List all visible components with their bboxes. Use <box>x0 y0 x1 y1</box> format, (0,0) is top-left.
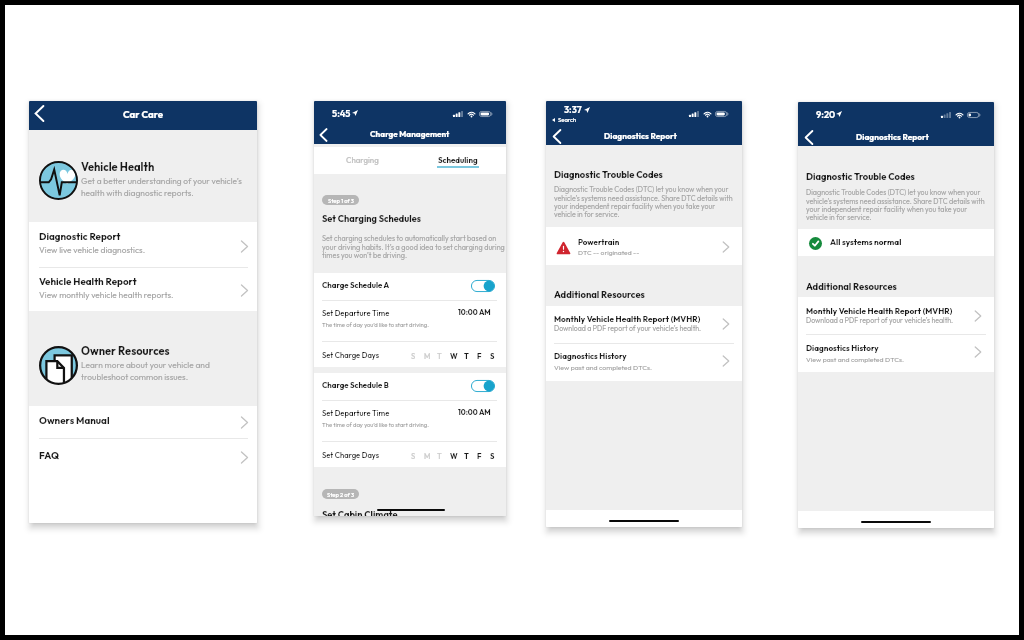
staticText: Set Departure Time <box>322 308 390 318</box>
staticText: Download a PDF report of your vehicle’s … <box>554 324 702 333</box>
staticText: Diagnostic Trouble Codes <box>806 171 915 183</box>
staticText: Set Charging Schedules <box>322 213 421 225</box>
button[interactable] <box>798 229 994 256</box>
staticText: S <box>411 451 416 461</box>
staticText: M <box>424 451 431 461</box>
button[interactable] <box>798 335 994 372</box>
button[interactable] <box>546 306 742 343</box>
button[interactable]: Back <box>800 126 816 145</box>
staticText: Diagnostic Trouble Codes <box>554 169 663 181</box>
staticText: Powertrain <box>578 237 620 247</box>
staticText: 3:37 <box>564 104 582 116</box>
staticText: Charge Schedule A <box>322 280 390 290</box>
staticText: The time of day you’d like to start driv… <box>322 321 429 328</box>
button[interactable] <box>410 147 506 174</box>
staticText: Step 2 of 3 <box>327 491 355 498</box>
staticText: S <box>411 351 416 361</box>
staticText: Monthly Vehicle Health Report (MVHR) <box>806 306 953 316</box>
button[interactable] <box>314 442 506 468</box>
button[interactable] <box>314 341 506 367</box>
staticText: FAQ <box>39 449 59 461</box>
staticText: View monthly vehicle health reports. <box>39 290 174 301</box>
staticText: Diagnostics Report <box>604 131 677 141</box>
staticText: M <box>424 351 431 361</box>
button[interactable] <box>29 439 257 471</box>
staticText: Diagnostics History <box>806 343 879 353</box>
staticText: Diagnostic Trouble Codes (DTC) let you k… <box>806 188 988 221</box>
button[interactable]: Back <box>548 125 564 144</box>
button[interactable] <box>546 343 742 380</box>
staticText: T <box>437 451 442 461</box>
button[interactable] <box>29 406 257 438</box>
staticText: Learn more about your vehicle and troubl… <box>81 360 257 382</box>
staticText: DTC -- originated -- <box>578 248 640 257</box>
staticText: View past and completed DTCs. <box>554 363 652 372</box>
staticText: Car Care <box>123 108 164 120</box>
button[interactable]: Back <box>31 103 49 127</box>
button[interactable] <box>314 301 506 341</box>
staticText: Monthly Vehicle Health Report (MVHR) <box>554 314 701 324</box>
staticText: 10:00 AM <box>458 308 491 317</box>
staticText: Download a PDF report of your vehicle’s … <box>806 316 954 325</box>
staticText: Set charging schedules to automatically … <box>322 234 506 260</box>
staticText: 5:45 <box>332 108 351 120</box>
staticText: Vehicle Health <box>81 160 155 174</box>
staticText: Set Charge Days <box>322 350 380 360</box>
button[interactable] <box>314 401 506 441</box>
staticText: Set Departure Time <box>322 408 390 418</box>
staticText: Scheduling <box>438 155 478 165</box>
staticText: Step 1 of 3 <box>328 197 354 204</box>
staticText: T <box>437 351 442 361</box>
button[interactable] <box>29 268 257 311</box>
staticText: F <box>477 351 482 361</box>
staticText: Additional Resources <box>554 289 645 301</box>
staticText: Set Charge Days <box>322 450 380 460</box>
staticText: W <box>450 451 458 461</box>
button[interactable]: Back <box>316 125 332 144</box>
staticText: T <box>464 351 469 361</box>
button[interactable] <box>798 297 994 334</box>
staticText: T <box>464 451 469 461</box>
button[interactable] <box>314 147 410 174</box>
button[interactable] <box>29 222 257 267</box>
staticText: Vehicle Health Report <box>39 275 137 287</box>
staticText: S <box>490 451 495 461</box>
staticText: Diagnostics History <box>554 351 627 361</box>
staticText: Get a better understanding of your vehic… <box>81 176 257 198</box>
staticText: S <box>490 351 495 361</box>
staticText: Diagnostics Report <box>856 132 929 142</box>
staticText: View past and completed DTCs. <box>806 355 904 364</box>
staticText: 9:20 <box>816 109 836 121</box>
staticText: F <box>477 451 482 461</box>
staticText: Owners Manual <box>39 414 110 426</box>
staticText: The time of day you’d like to start driv… <box>322 421 429 428</box>
staticText: 10:00 AM <box>458 408 491 417</box>
staticText: W <box>450 351 458 361</box>
staticText: View live vehicle diagnostics. <box>39 245 146 256</box>
staticText: Owner Resources <box>81 344 170 358</box>
button[interactable] <box>314 373 506 401</box>
button[interactable] <box>314 273 506 301</box>
staticText: Charge Schedule B <box>322 380 389 390</box>
staticText: Set Cabin Climate <box>322 509 398 516</box>
staticText: All systems normal <box>830 237 902 247</box>
staticText: Charging <box>346 155 379 165</box>
staticText: Search <box>558 116 577 123</box>
staticText: Diagnostic Report <box>39 230 121 242</box>
staticText: Diagnostic Trouble Codes (DTC) let you k… <box>554 185 736 218</box>
button[interactable] <box>546 227 742 265</box>
staticText: Charge Management <box>370 129 450 139</box>
staticText: Additional Resources <box>806 281 897 293</box>
